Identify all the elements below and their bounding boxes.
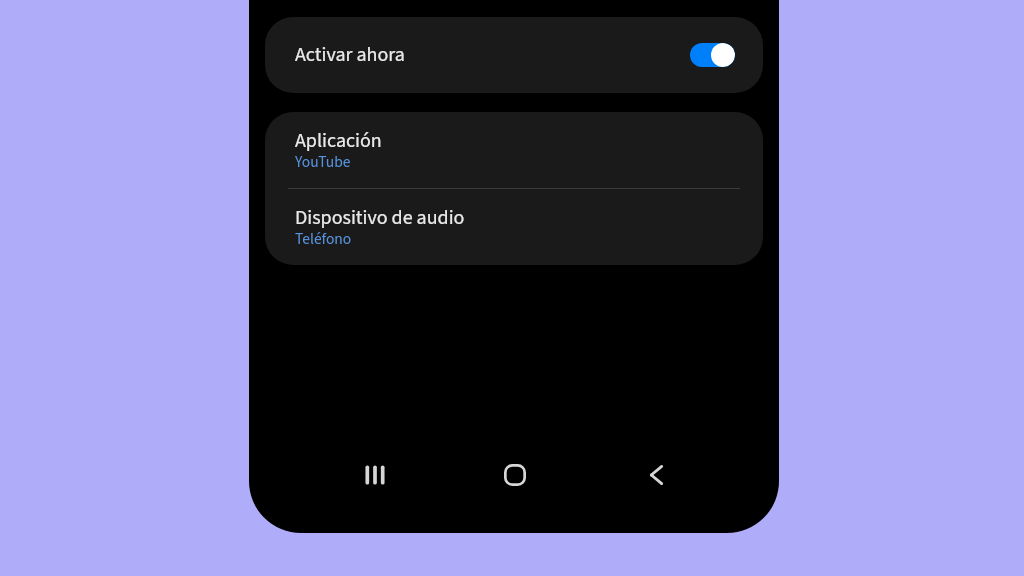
staticText: Aplicación bbox=[295, 127, 382, 155]
button[interactable]: Aplicación bbox=[265, 112, 763, 188]
button[interactable]: Activar ahora bbox=[265, 17, 763, 93]
button[interactable]: Recent apps bbox=[342, 443, 407, 507]
staticText: Teléfono bbox=[295, 228, 352, 250]
button[interactable]: Activar ahora bbox=[690, 43, 735, 67]
staticText: YouTube bbox=[295, 151, 351, 173]
staticText: Dispositivo de audio bbox=[295, 204, 465, 232]
staticText: Activar ahora bbox=[295, 41, 405, 69]
button[interactable]: Home bbox=[482, 443, 547, 507]
button[interactable]: Dispositivo de audio bbox=[265, 189, 763, 265]
button[interactable]: Back bbox=[622, 443, 687, 507]
